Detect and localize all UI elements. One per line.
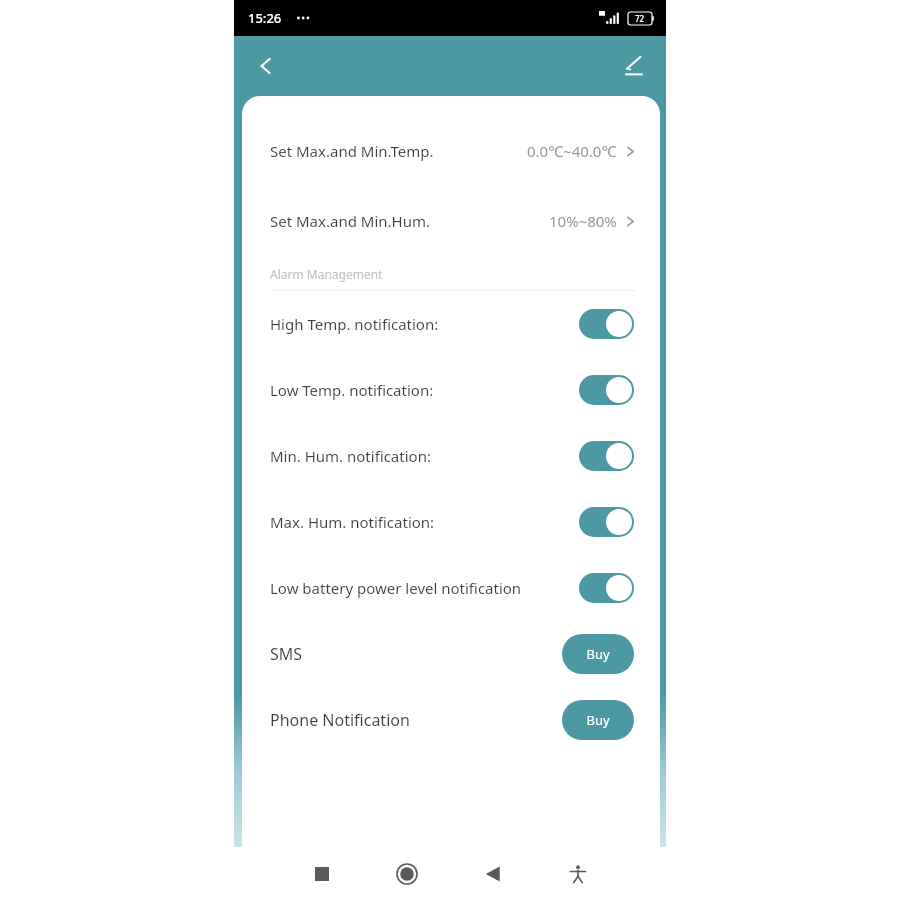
button[interactable]: High Temp. notification:: [242, 291, 660, 357]
button[interactable]: Min. Hum. notification:: [242, 423, 660, 489]
staticText: Alarm Management: [270, 266, 383, 282]
button[interactable]: Accessibility: [556, 852, 600, 896]
button[interactable]: Toggle: [579, 309, 634, 339]
button[interactable]: Recent apps: [300, 852, 344, 896]
staticText: Low battery power level notification: [270, 578, 579, 598]
staticText: Low Temp. notification:: [270, 380, 579, 400]
staticText: Max. Hum. notification:: [270, 512, 579, 532]
button[interactable]: Toggle: [579, 507, 634, 537]
staticText: SMS: [270, 643, 562, 665]
button[interactable]: Toggle: [579, 441, 634, 471]
staticText: 10%~80%: [549, 211, 617, 231]
staticText: Set Max.and Min.Temp.: [270, 141, 527, 161]
button[interactable]: Home: [385, 852, 429, 896]
button[interactable]: Set Max.and Min.Temp.: [242, 124, 660, 178]
staticText: 15:26: [248, 9, 282, 27]
button[interactable]: Buy: [562, 700, 634, 740]
staticText: 0.0℃~40.0℃: [527, 141, 617, 161]
button[interactable]: Edit: [612, 44, 656, 88]
button[interactable]: Max. Hum. notification:: [242, 489, 660, 555]
button[interactable]: Buy: [562, 634, 634, 674]
staticText: Phone Notification: [270, 709, 562, 731]
staticText: Buy: [586, 645, 610, 663]
button[interactable]: Back: [244, 44, 288, 88]
button[interactable]: Low Temp. notification:: [242, 357, 660, 423]
button[interactable]: Low battery power level notification: [242, 555, 660, 621]
button[interactable]: Toggle: [579, 573, 634, 603]
staticText: High Temp. notification:: [270, 314, 579, 334]
staticText: Buy: [586, 711, 610, 729]
button[interactable]: Toggle: [579, 375, 634, 405]
button[interactable]: Back: [471, 852, 515, 896]
button[interactable]: Set Max.and Min.Hum.: [242, 194, 660, 248]
staticText: Set Max.and Min.Hum.: [270, 211, 549, 231]
staticText: 72: [635, 13, 645, 24]
staticText: Min. Hum. notification:: [270, 446, 579, 466]
